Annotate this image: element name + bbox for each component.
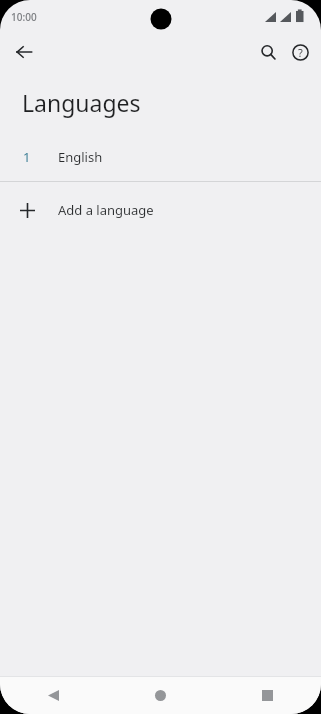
- button[interactable]: Help: [284, 36, 316, 68]
- button[interactable]: Back: [8, 36, 40, 68]
- staticText: English: [58, 148, 103, 166]
- staticText: Languages: [22, 87, 141, 118]
- button[interactable]: Search: [252, 36, 284, 68]
- staticText: Add a language: [58, 201, 154, 219]
- button[interactable]: Back: [0, 677, 107, 714]
- button[interactable]: 1: [0, 133, 321, 181]
- staticText: 10:00: [11, 10, 37, 24]
- button[interactable]: Add a language: [0, 182, 321, 237]
- staticText: 1: [23, 148, 31, 166]
- staticText: ?: [298, 45, 303, 60]
- button[interactable]: Home: [107, 677, 214, 714]
- button[interactable]: Recent apps: [214, 677, 321, 714]
